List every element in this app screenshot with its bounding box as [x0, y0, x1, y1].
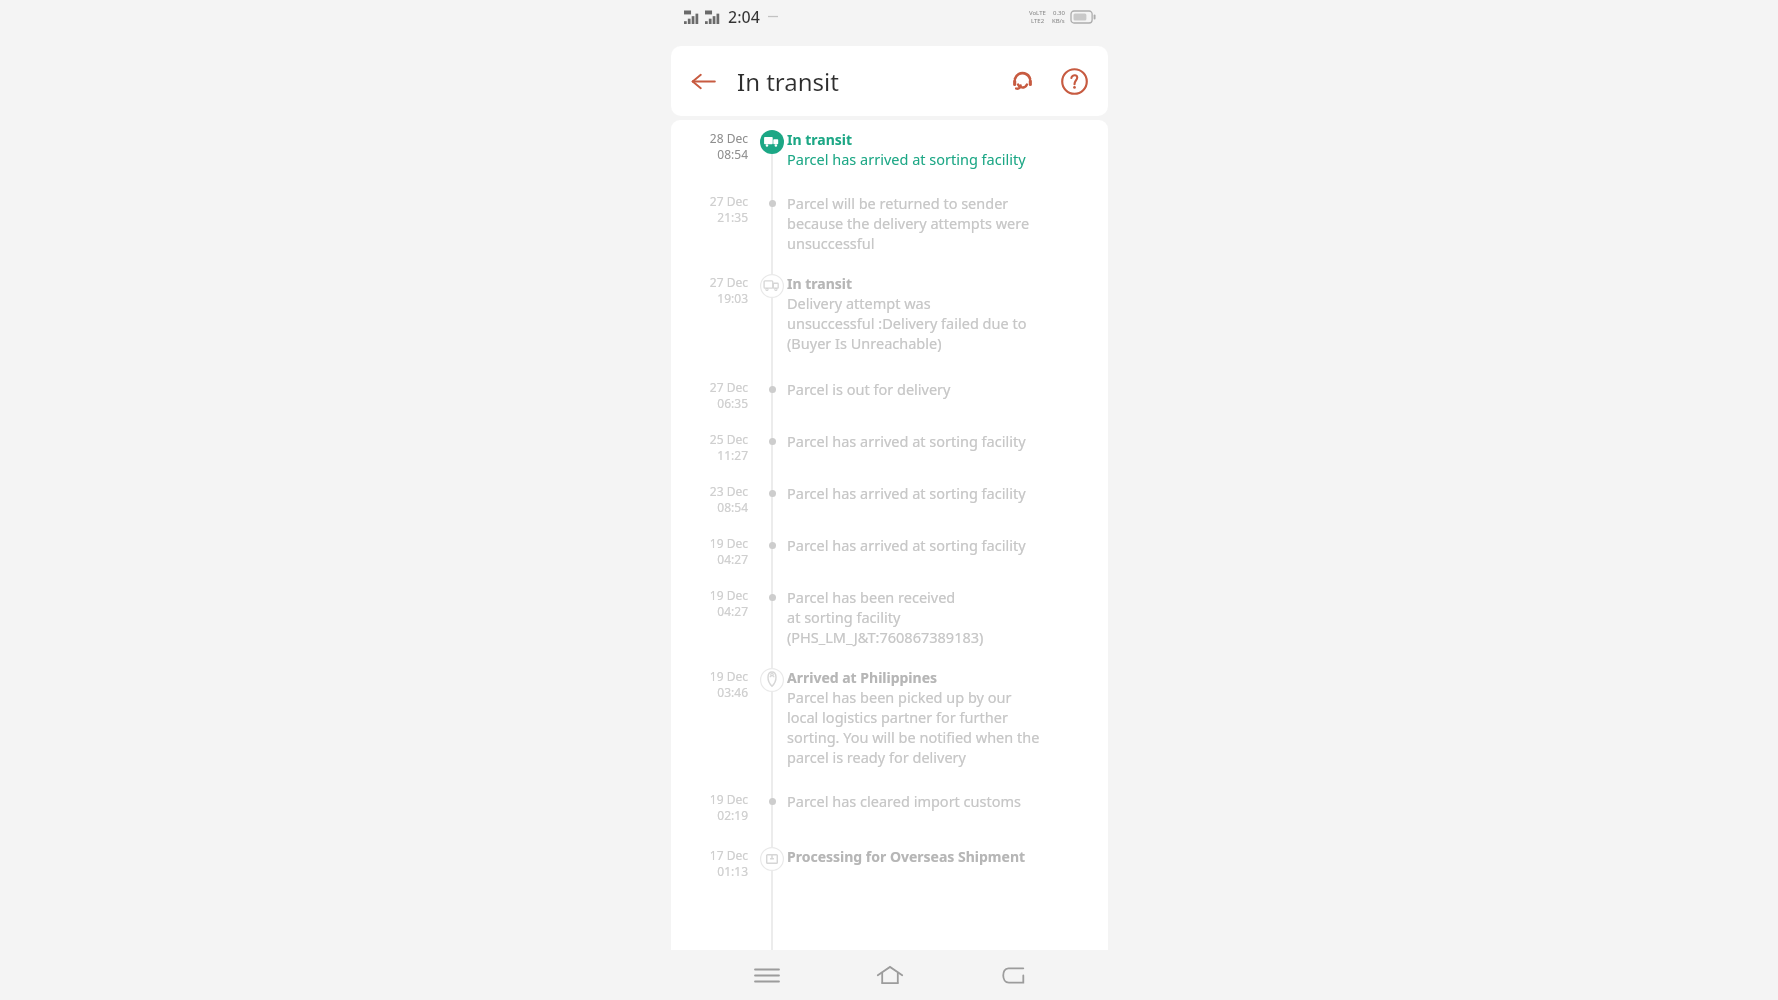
- staticText: In transit: [737, 65, 839, 98]
- button[interactable]: 19 Dec: [671, 587, 1108, 647]
- staticText: Parcel has been picked up by our: [787, 687, 1012, 707]
- button[interactable]: 25 Dec: [671, 431, 1108, 463]
- staticText: 27 Dec: [709, 193, 748, 209]
- staticText: Parcel has arrived at sorting facility: [787, 149, 1026, 169]
- button[interactable]: Back: [985, 950, 1039, 1000]
- staticText: (PHS_LM_J&T:760867389183): [787, 627, 984, 647]
- staticText: Parcel will be returned to sender: [787, 193, 1009, 213]
- staticText: Processing for Overseas Shipment: [787, 847, 1026, 866]
- staticText: VoLTE: [1029, 9, 1046, 17]
- staticText: 08:54: [717, 146, 748, 162]
- staticText: 21:35: [717, 209, 748, 225]
- staticText: 27 Dec: [709, 379, 748, 395]
- button[interactable]: 27 Dec: [671, 193, 1108, 253]
- staticText: 0.30: [1053, 9, 1065, 17]
- staticText: Parcel is out for delivery: [787, 379, 951, 399]
- staticText: parcel is ready for delivery: [787, 747, 966, 767]
- staticText: Parcel has arrived at sorting facility: [787, 483, 1026, 503]
- staticText: 19 Dec: [709, 587, 748, 603]
- staticText: sorting. You will be notified when the: [787, 727, 1040, 747]
- staticText: unsuccessful: [787, 233, 875, 253]
- staticText: Parcel has arrived at sorting facility: [787, 431, 1026, 451]
- staticText: 25 Dec: [709, 431, 748, 447]
- staticText: Parcel has been received: [787, 587, 956, 607]
- staticText: at sorting facility: [787, 607, 901, 627]
- staticText: In transit: [787, 130, 853, 149]
- staticText: 23 Dec: [709, 483, 748, 499]
- staticText: 04:27: [717, 603, 748, 619]
- staticText: 03:46: [717, 684, 748, 700]
- staticText: 27 Dec: [709, 274, 748, 290]
- staticText: LTE2: [1031, 17, 1045, 25]
- staticText: 04:27: [717, 551, 748, 567]
- staticText: 02:19: [717, 807, 748, 823]
- staticText: Arrived at Philippines: [787, 668, 938, 687]
- staticText: Parcel has cleared import customs: [787, 791, 1021, 811]
- staticText: 19 Dec: [709, 668, 748, 684]
- staticText: 08:54: [717, 499, 748, 515]
- button[interactable]: 19 Dec: [671, 535, 1108, 567]
- button[interactable]: Help: [1053, 60, 1095, 102]
- staticText: 19 Dec: [709, 791, 748, 807]
- staticText: In transit: [787, 274, 853, 293]
- button[interactable]: 19 Dec: [671, 668, 1108, 767]
- staticText: 28 Dec: [709, 130, 748, 146]
- staticText: Delivery attempt was: [787, 293, 931, 313]
- button[interactable]: Customer support: [1001, 60, 1043, 102]
- button[interactable]: 19 Dec: [671, 791, 1108, 823]
- staticText: 19 Dec: [709, 535, 748, 551]
- button[interactable]: 23 Dec: [671, 483, 1108, 515]
- button[interactable]: 17 Dec: [671, 847, 1108, 879]
- staticText: because the delivery attempts were: [787, 213, 1030, 233]
- staticText: 11:27: [717, 447, 748, 463]
- button[interactable]: 28 Dec: [671, 130, 1108, 169]
- staticText: Parcel has arrived at sorting facility: [787, 535, 1026, 555]
- staticText: 01:13: [717, 863, 748, 879]
- staticText: (Buyer Is Unreachable): [787, 333, 942, 353]
- staticText: 2:04: [728, 6, 760, 28]
- staticText: 06:35: [717, 395, 748, 411]
- staticText: local logistics partner for further: [787, 707, 1008, 727]
- button[interactable]: Back: [682, 60, 724, 102]
- staticText: KB/s: [1052, 17, 1065, 25]
- staticText: 19:03: [717, 290, 748, 306]
- staticText: 17 Dec: [709, 847, 748, 863]
- button[interactable]: 27 Dec: [671, 379, 1108, 411]
- button[interactable]: 27 Dec: [671, 274, 1108, 353]
- button[interactable]: Home: [863, 950, 917, 1000]
- button[interactable]: Recent apps: [740, 950, 794, 1000]
- staticText: unsuccessful :Delivery failed due to: [787, 313, 1027, 333]
